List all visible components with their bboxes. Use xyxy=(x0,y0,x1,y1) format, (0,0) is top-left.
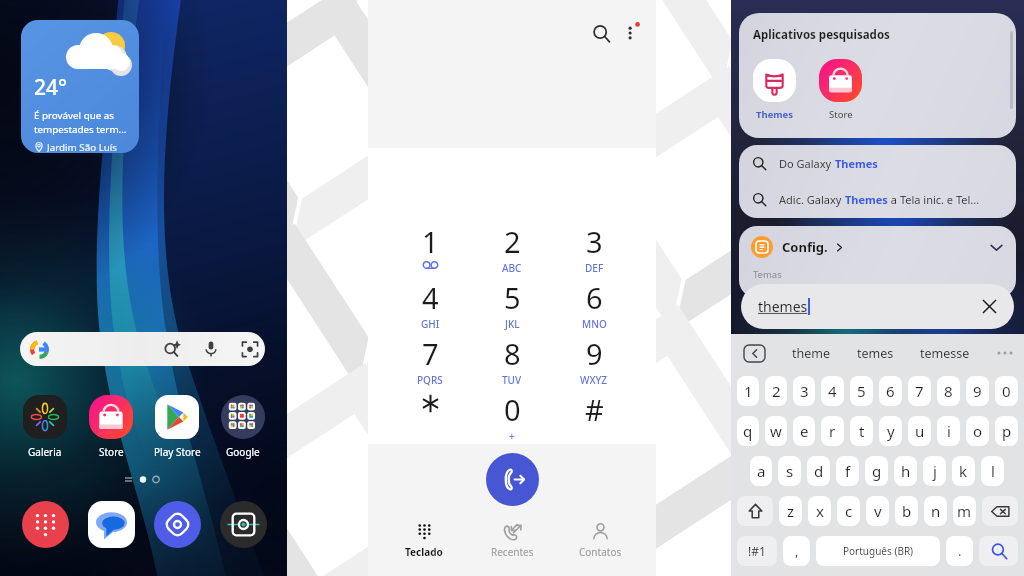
button[interactable]: 9 xyxy=(966,376,989,406)
button[interactable]: 2 xyxy=(471,222,553,278)
button[interactable]: Search with AI xyxy=(20,332,265,366)
button[interactable]: theme xyxy=(792,345,831,362)
staticText: Themes xyxy=(756,108,794,121)
staticText: 3 xyxy=(586,222,603,261)
button[interactable]: a xyxy=(750,456,772,486)
button[interactable]: 3 xyxy=(553,222,635,278)
staticText: g xyxy=(872,461,882,481)
staticText: b xyxy=(902,501,912,521)
staticText: !#1 xyxy=(748,543,766,559)
staticText: Temas xyxy=(753,268,782,281)
button[interactable]: Mensagens xyxy=(78,500,144,548)
other: Google Lens xyxy=(241,340,259,358)
button[interactable]: o xyxy=(966,416,989,446)
button[interactable]: 5 xyxy=(471,278,553,334)
button[interactable]: More options xyxy=(616,18,646,48)
button[interactable]: Do Galaxy xyxy=(739,145,1016,181)
button[interactable]: Themes xyxy=(753,59,796,121)
button[interactable]: 1 xyxy=(389,222,471,278)
button[interactable]: , xyxy=(783,536,810,566)
staticText: 5 xyxy=(504,278,521,317)
button[interactable]: 4 xyxy=(821,376,844,406)
button[interactable]: Shift xyxy=(737,496,773,526)
button[interactable]: x xyxy=(808,496,831,526)
button[interactable]: t xyxy=(850,416,873,446)
staticText: d xyxy=(814,461,824,481)
button[interactable]: Teclado xyxy=(380,519,468,562)
button[interactable]: 0 xyxy=(995,376,1018,406)
other: Search with AI xyxy=(163,340,181,358)
button[interactable]: z xyxy=(779,496,802,526)
button[interactable]: s xyxy=(778,456,801,486)
button[interactable]: # xyxy=(553,390,635,446)
staticText: themes xyxy=(758,297,808,316)
button[interactable]: n xyxy=(924,496,947,526)
button[interactable]: temesse xyxy=(920,345,970,362)
button[interactable]: 6 xyxy=(553,278,635,334)
button[interactable]: 24° xyxy=(21,20,139,153)
button[interactable]: Store xyxy=(819,59,862,121)
button[interactable]: . xyxy=(946,536,973,566)
button[interactable]: w xyxy=(765,416,787,446)
button[interactable]: 4 xyxy=(389,278,471,334)
button[interactable]: d xyxy=(807,456,830,486)
button[interactable]: temes xyxy=(857,345,894,362)
button[interactable]: Adic. Galaxy xyxy=(739,181,1016,217)
button[interactable]: j xyxy=(923,456,946,486)
button[interactable]: 0 xyxy=(471,390,553,446)
button[interactable]: themes xyxy=(741,284,1014,329)
button[interactable]: 8 xyxy=(937,376,960,406)
button[interactable]: 7 xyxy=(389,334,471,390)
staticText: 0 xyxy=(1002,381,1011,401)
button[interactable]: c xyxy=(837,496,860,526)
button[interactable]: k xyxy=(952,456,975,486)
button[interactable]: 6 xyxy=(879,376,902,406)
button[interactable]: e xyxy=(793,416,815,446)
button[interactable]: Call xyxy=(486,453,539,506)
button[interactable]: 7 xyxy=(908,376,931,406)
button[interactable]: Câmera xyxy=(210,500,276,548)
button[interactable]: Galeria xyxy=(12,395,78,459)
button[interactable]: More xyxy=(996,344,1014,362)
staticText: ABC xyxy=(502,261,522,275)
button[interactable]: Telefone xyxy=(12,500,78,548)
button[interactable]: 1 xyxy=(737,376,759,406)
button[interactable]: i xyxy=(937,416,960,446)
button[interactable]: Search xyxy=(979,536,1018,566)
button[interactable]: y xyxy=(879,416,902,446)
button[interactable]: Internet xyxy=(144,500,210,548)
button[interactable]: Contatos xyxy=(556,519,644,562)
button[interactable]: f xyxy=(836,456,859,486)
button[interactable]: l xyxy=(981,456,1004,486)
button[interactable]: h xyxy=(894,456,917,486)
staticText: f xyxy=(845,461,851,481)
button[interactable]: 3 xyxy=(793,376,815,406)
button[interactable]: Previous xyxy=(741,342,767,364)
button[interactable]: Backspace xyxy=(982,496,1018,526)
staticText: 9 xyxy=(973,381,982,401)
button[interactable]: g xyxy=(865,456,888,486)
button[interactable]: !#1 xyxy=(737,536,777,566)
button[interactable]: Português (BR) xyxy=(816,536,940,566)
button[interactable]: q xyxy=(737,416,759,446)
staticText: # xyxy=(585,390,604,429)
button[interactable]: 2 xyxy=(765,376,787,406)
staticText: 9 xyxy=(586,334,603,373)
button[interactable]: u xyxy=(908,416,931,446)
button[interactable]: Play Store xyxy=(144,395,210,459)
staticText: Play Store xyxy=(154,445,201,459)
button[interactable]: b xyxy=(895,496,918,526)
button[interactable]: Google xyxy=(210,395,276,459)
button[interactable]: Config. xyxy=(751,226,1004,268)
button[interactable]: Recentes xyxy=(468,519,556,562)
button[interactable]: 5 xyxy=(850,376,873,406)
button[interactable]: 9 xyxy=(553,334,635,390)
button[interactable]: m xyxy=(953,496,976,526)
button[interactable]: 8 xyxy=(471,334,553,390)
button[interactable]: Store xyxy=(78,395,144,459)
button[interactable]: p xyxy=(995,416,1018,446)
button[interactable]: Search xyxy=(586,18,616,48)
button[interactable]: v xyxy=(866,496,889,526)
button[interactable] xyxy=(389,390,471,446)
button[interactable]: r xyxy=(821,416,844,446)
